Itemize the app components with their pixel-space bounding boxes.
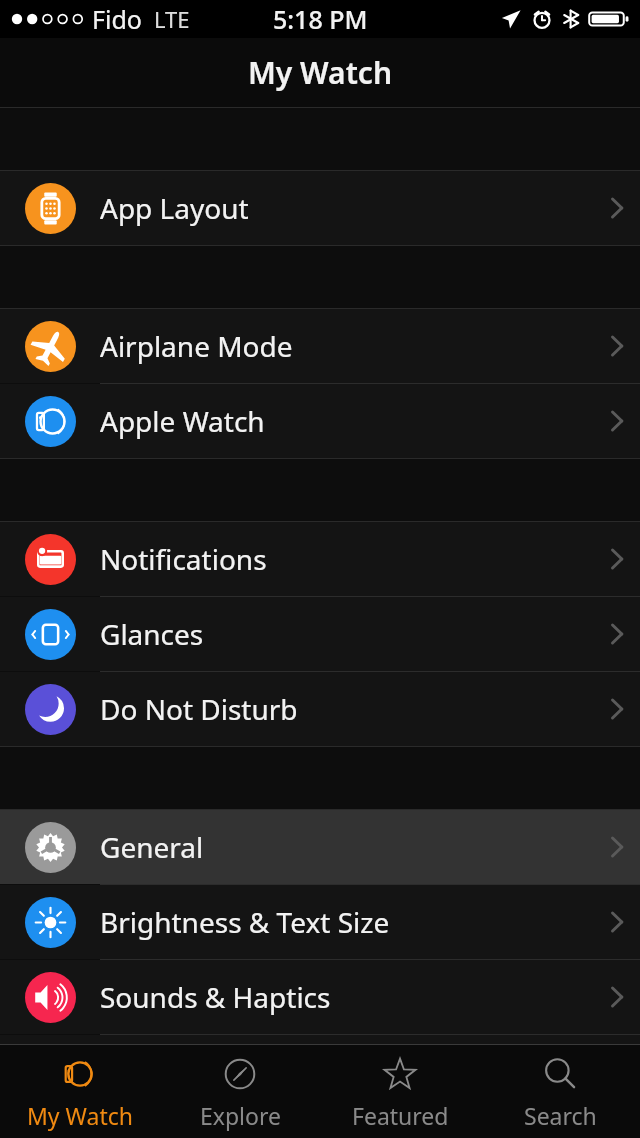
staticText: Featured bbox=[352, 1100, 449, 1131]
staticText: Apple Watch bbox=[100, 402, 265, 440]
button[interactable]: Search bbox=[480, 1045, 640, 1138]
button[interactable]: My Watch bbox=[0, 1045, 160, 1138]
button[interactable]: Do Not Disturb bbox=[0, 672, 640, 746]
staticText: Search bbox=[524, 1100, 597, 1131]
button[interactable]: Glances bbox=[0, 597, 640, 671]
button[interactable]: General bbox=[0, 810, 640, 884]
staticText: Airplane Mode bbox=[100, 327, 293, 365]
staticText: Do Not Disturb bbox=[100, 690, 298, 728]
button[interactable]: App Layout bbox=[0, 171, 640, 245]
staticText: My Watch bbox=[27, 1100, 133, 1131]
button[interactable]: Featured bbox=[320, 1045, 480, 1138]
staticText: General bbox=[100, 828, 204, 866]
button[interactable]: Passcode bbox=[0, 1035, 640, 1109]
button[interactable]: Apple Watch bbox=[0, 384, 640, 458]
staticText: LTE bbox=[154, 4, 190, 34]
staticText: Fido bbox=[92, 2, 142, 36]
button[interactable]: Airplane Mode bbox=[0, 309, 640, 383]
button[interactable]: Notifications bbox=[0, 522, 640, 596]
button[interactable]: Explore bbox=[160, 1045, 320, 1138]
staticText: Notifications bbox=[100, 540, 267, 578]
button[interactable]: Sounds & Haptics bbox=[0, 960, 640, 1034]
staticText: 5:18 PM bbox=[273, 2, 368, 36]
staticText: App Layout bbox=[100, 189, 249, 227]
staticText: Brightness & Text Size bbox=[100, 903, 390, 941]
staticText: My Watch bbox=[248, 52, 393, 93]
staticText: Glances bbox=[100, 615, 204, 653]
staticText: Sounds & Haptics bbox=[100, 978, 331, 1016]
button[interactable]: Brightness & Text Size bbox=[0, 885, 640, 959]
staticText: Explore bbox=[200, 1100, 281, 1131]
